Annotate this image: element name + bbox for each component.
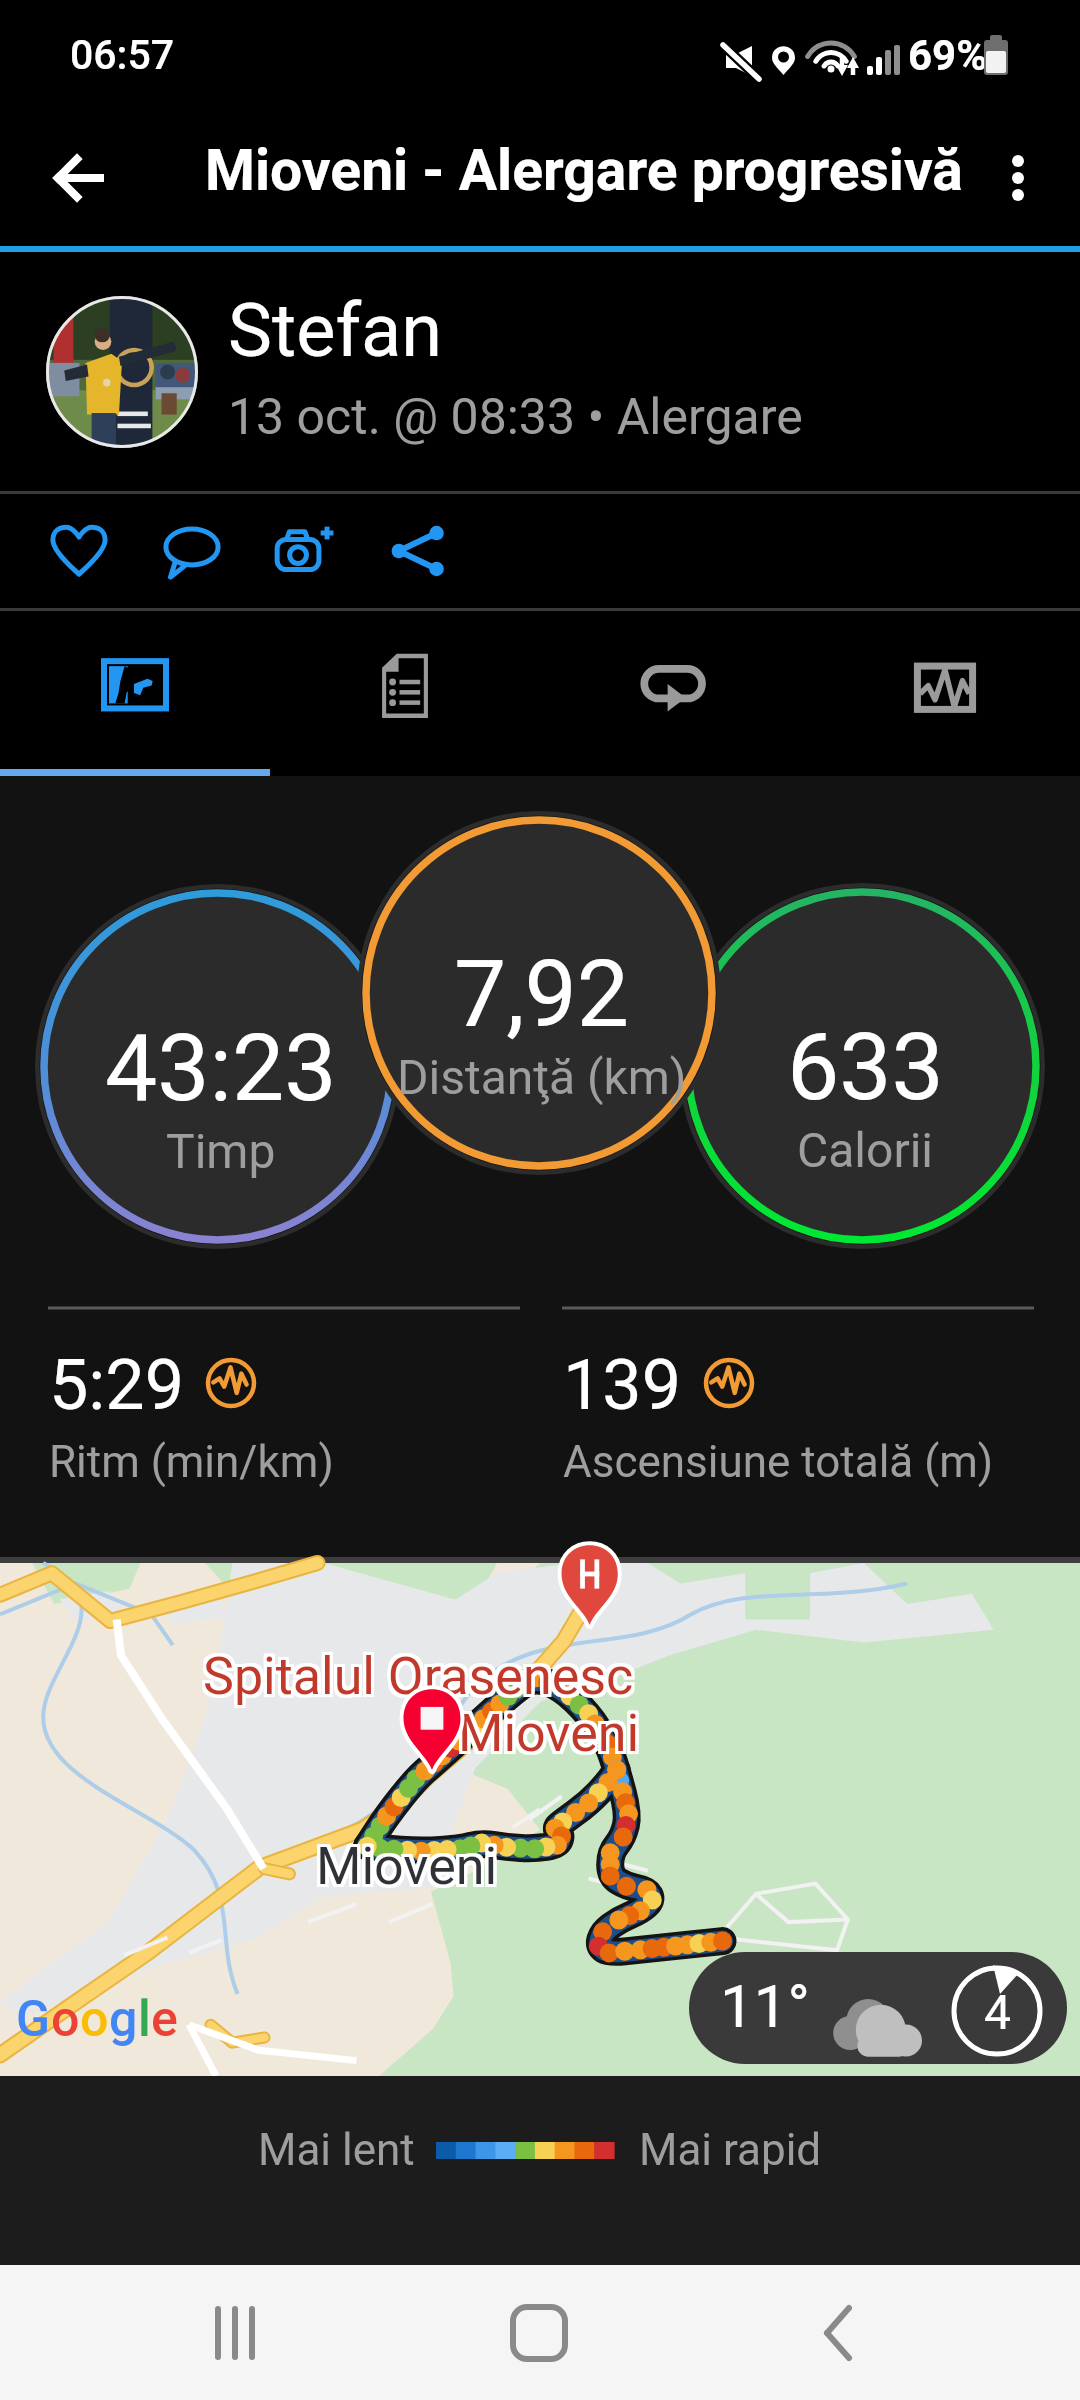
button[interactable]: Recents bbox=[165, 2278, 305, 2388]
staticText: Mioveni bbox=[313, 1839, 495, 1900]
staticText: 139 bbox=[563, 1344, 682, 1426]
staticText: o bbox=[80, 1990, 109, 2049]
staticText: Mioveni bbox=[313, 1836, 495, 1897]
staticText: 633 bbox=[787, 1013, 944, 1122]
staticText: Spitalul Orasenesc bbox=[206, 1649, 637, 1710]
staticText: 7,92 bbox=[454, 940, 630, 1049]
staticText: Ascensiune totală (m) bbox=[563, 1436, 994, 1488]
button[interactable]: Weather 11 degrees bbox=[689, 1952, 1067, 2064]
staticText: 13 oct. @ 08:33 • Alergare bbox=[228, 388, 803, 447]
button[interactable]: Splits bbox=[270, 611, 540, 776]
staticText: G bbox=[16, 1990, 51, 2049]
staticText: Mioveni bbox=[313, 1833, 495, 1894]
staticText: Mioveni bbox=[461, 1700, 643, 1761]
staticText: Spitalul Orasenesc bbox=[203, 1649, 634, 1710]
staticText: Spitalul Orasenesc bbox=[203, 1646, 634, 1707]
staticText: Mioveni bbox=[461, 1706, 643, 1767]
staticText: 11° bbox=[720, 1971, 810, 2041]
staticText: e bbox=[151, 1990, 178, 2049]
staticText: Mai rapid bbox=[639, 2124, 822, 2176]
staticText: Spitalul Orasenesc bbox=[206, 1643, 637, 1704]
staticText: Mioveni bbox=[319, 1839, 501, 1900]
staticText: Ritm (min/km) bbox=[49, 1436, 334, 1488]
staticText: l bbox=[138, 1990, 151, 2049]
button[interactable]: Back bbox=[34, 132, 126, 224]
staticText: Timp bbox=[166, 1123, 276, 1179]
staticText: Spitalul Orasenesc bbox=[206, 1646, 637, 1707]
staticText: Mioveni bbox=[316, 1836, 498, 1897]
staticText: Mioveni bbox=[316, 1839, 498, 1900]
button[interactable]: Map bbox=[0, 611, 270, 776]
button[interactable]: Laps bbox=[540, 611, 810, 776]
button[interactable]: Home bbox=[469, 2278, 609, 2388]
staticText: Mioveni bbox=[455, 1703, 637, 1764]
button[interactable]: Add photo bbox=[248, 494, 361, 608]
button[interactable]: More options bbox=[978, 138, 1058, 218]
staticText: Calorii bbox=[797, 1122, 934, 1178]
staticText: Mioveni - Alergare progresivă bbox=[205, 137, 963, 204]
staticText: 43:23 bbox=[105, 1014, 337, 1123]
button[interactable]: Comment bbox=[135, 494, 248, 608]
staticText: Spitalul Orasenesc bbox=[203, 1643, 634, 1704]
staticText: Spitalul Orasenesc bbox=[200, 1643, 631, 1704]
staticText: Mioveni bbox=[319, 1833, 501, 1894]
staticText: 4 bbox=[984, 1984, 1011, 2040]
staticText: Mioveni bbox=[455, 1706, 637, 1767]
staticText: Mioveni bbox=[316, 1833, 498, 1894]
button[interactable]: Stefan bbox=[0, 252, 1080, 491]
staticText: 5:29 bbox=[49, 1344, 184, 1426]
staticText: Mioveni bbox=[458, 1700, 640, 1761]
button[interactable]: Like bbox=[22, 494, 135, 608]
staticText: Distanţă (km) bbox=[397, 1049, 687, 1105]
staticText: Mioveni bbox=[461, 1703, 643, 1764]
staticText: Mioveni bbox=[458, 1706, 640, 1767]
staticText: g bbox=[109, 1990, 138, 2049]
staticText: Mioveni bbox=[458, 1703, 640, 1764]
staticText: 69% bbox=[908, 31, 988, 80]
staticText: Spitalul Orasenesc bbox=[200, 1649, 631, 1710]
button[interactable]: Graphs bbox=[810, 611, 1080, 776]
staticText: Mioveni bbox=[455, 1700, 637, 1761]
staticText: o bbox=[51, 1990, 80, 2049]
staticText: Spitalul Orasenesc bbox=[200, 1646, 631, 1707]
staticText: Mai lent bbox=[258, 2124, 415, 2176]
staticText: 06:57 bbox=[70, 31, 175, 79]
staticText: Mioveni bbox=[319, 1836, 501, 1897]
button[interactable]: Back bbox=[771, 2278, 911, 2388]
button[interactable]: Share bbox=[361, 494, 474, 608]
staticText: Stefan bbox=[228, 287, 443, 374]
